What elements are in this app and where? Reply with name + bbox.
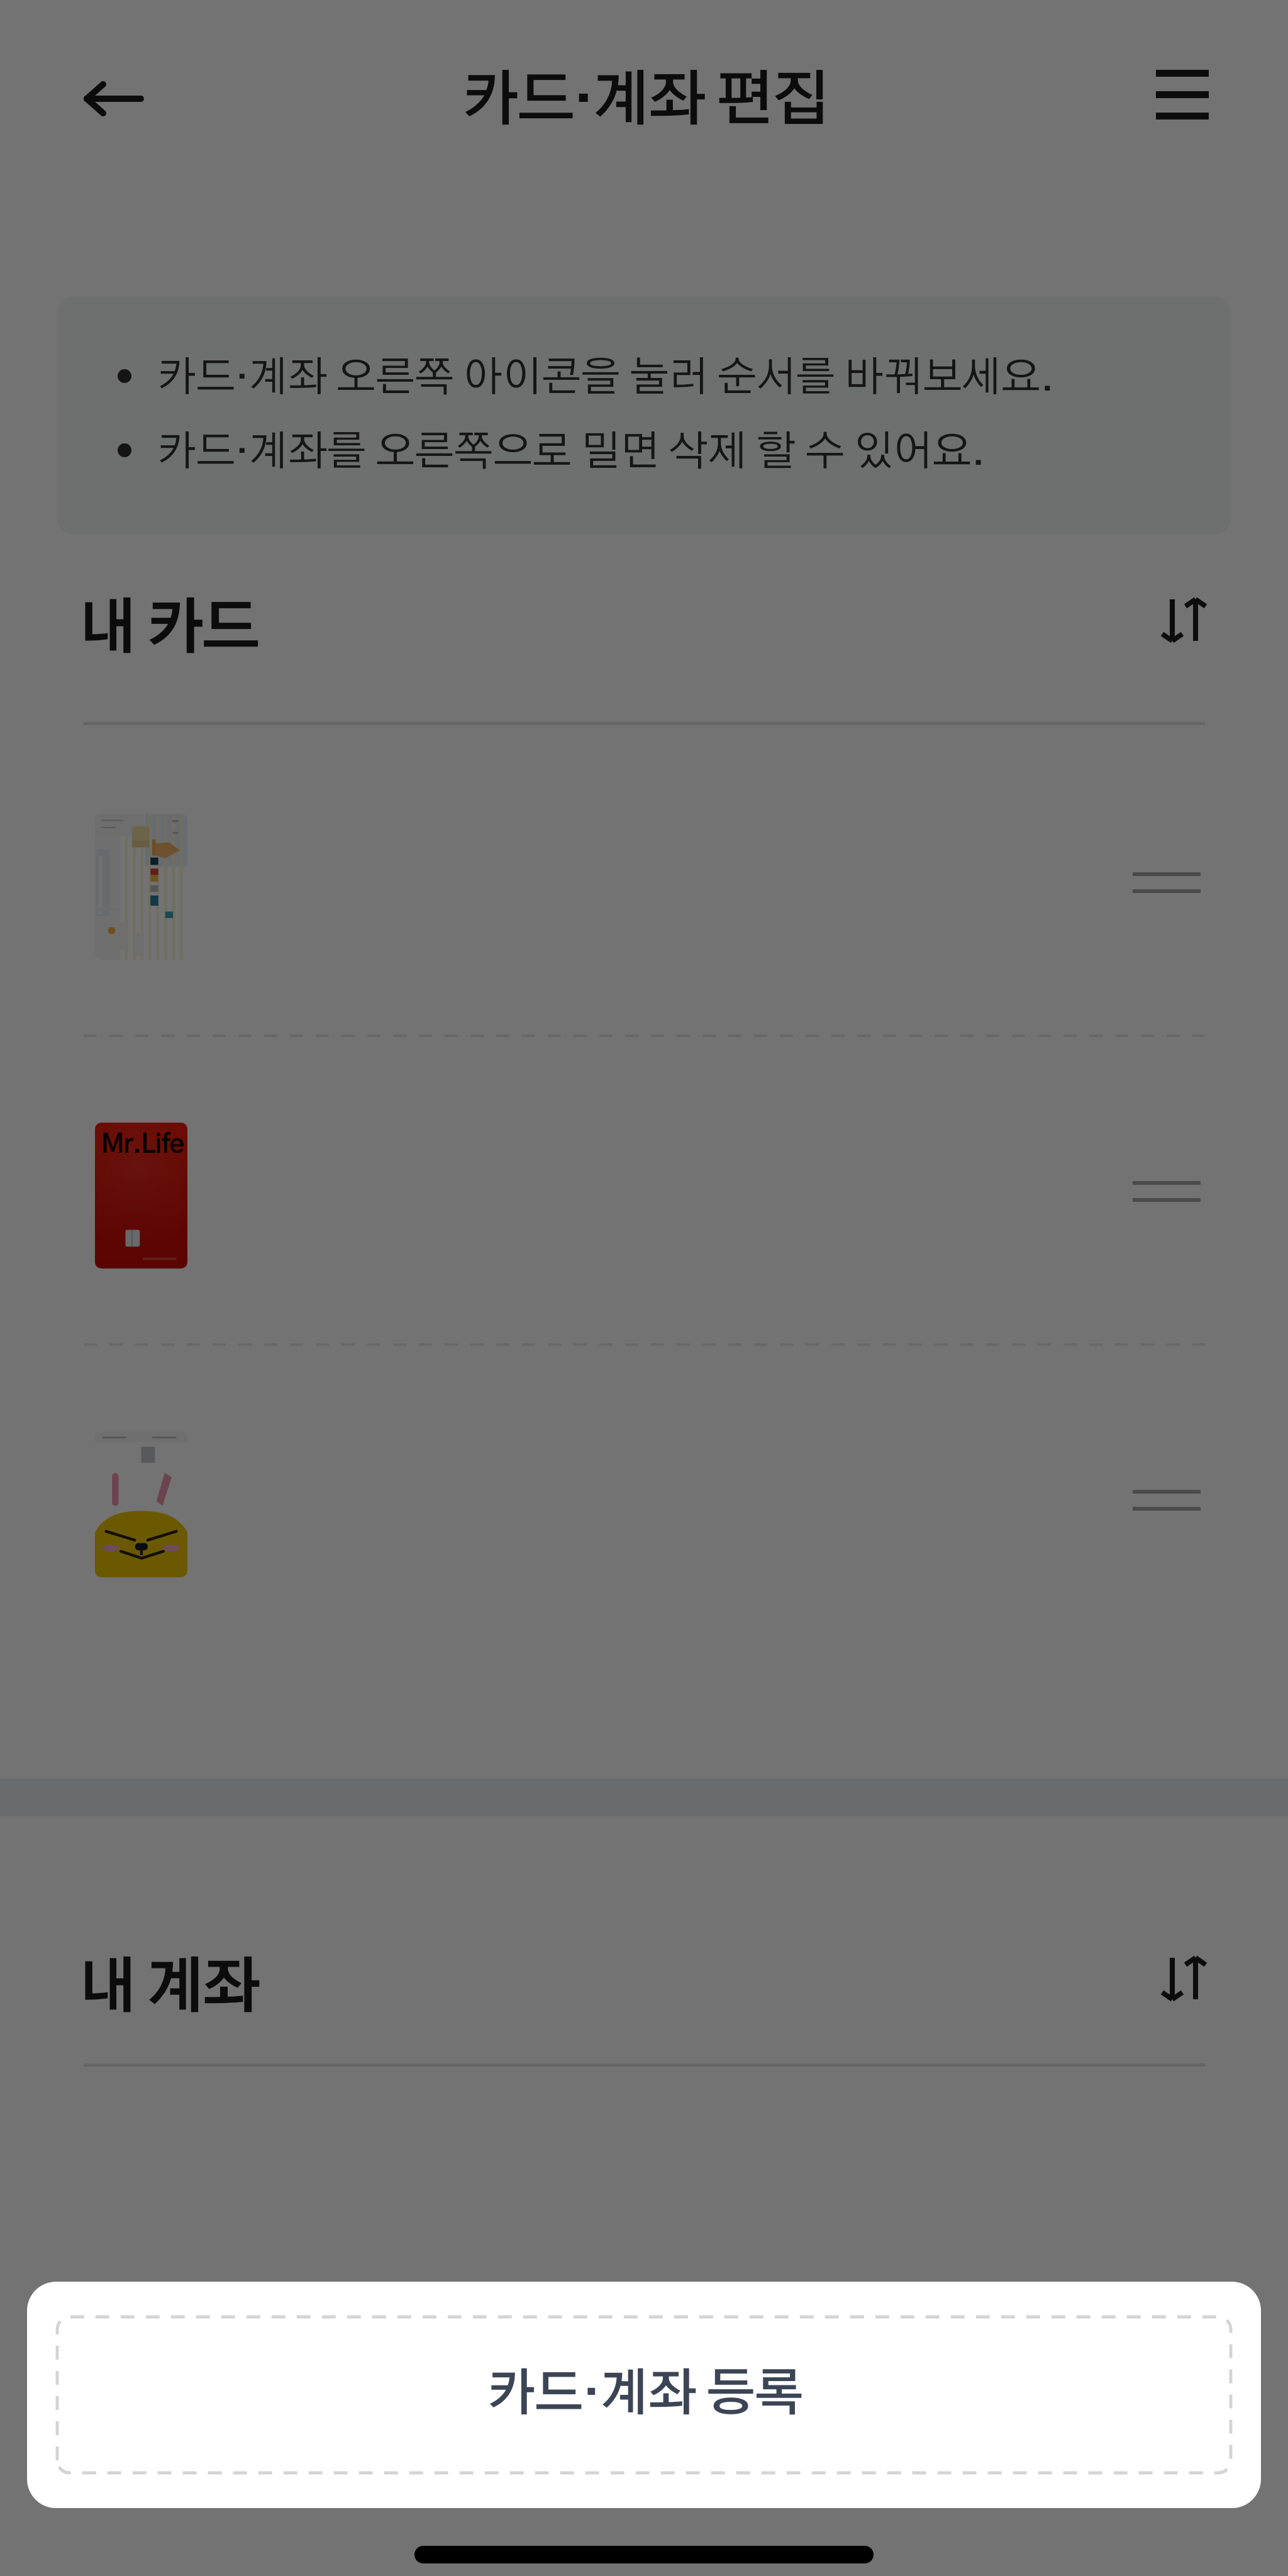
button[interactable]: Sort (1133, 1928, 1234, 2029)
button[interactable]: 카드·계좌 등록 (57, 2317, 1231, 2473)
button[interactable]: Reorder (1108, 1446, 1226, 1547)
button[interactable]: Card 3 (0, 1340, 1288, 1648)
staticText: 카드·계좌를 오른쪽으로 밀면 삭제 할 수 있어요. (157, 431, 985, 473)
button[interactable]: Card 2 (0, 1031, 1288, 1340)
button[interactable]: Card 1 (0, 722, 1288, 1031)
staticText: 내 카드 (78, 600, 258, 660)
staticText: 내 계좌 (78, 1959, 258, 2019)
button[interactable]: Reorder (1108, 1138, 1226, 1238)
staticText: Mr.Life (101, 1132, 184, 1158)
button[interactable]: Sort (1133, 570, 1234, 670)
button[interactable]: Reorder (1108, 829, 1226, 930)
staticText: 카드·계좌 등록 (486, 2370, 802, 2420)
staticText: 카드·계좌 오른쪽 아이콘을 눌러 순서를 바꿔보세요. (157, 357, 1054, 399)
button[interactable]: Menu (1132, 44, 1233, 145)
staticText: 카드·계좌 편집 (0, 72, 1288, 2576)
button[interactable]: Back (64, 48, 164, 149)
